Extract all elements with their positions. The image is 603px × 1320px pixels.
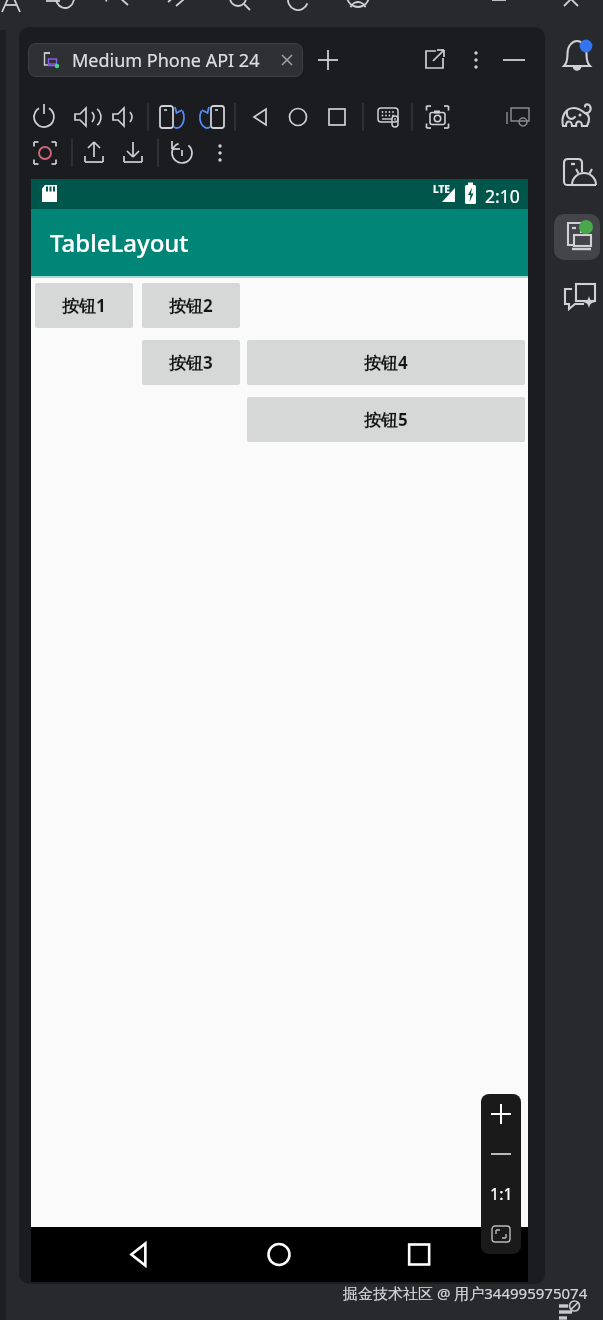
- button[interactable]: 按钮1: [35, 283, 133, 328]
- staticText: Medium Phone API 24: [72, 48, 260, 73]
- staticText: 按钮3: [169, 351, 213, 374]
- staticText: 按钮1: [62, 294, 106, 317]
- button[interactable]: 按钮4: [247, 340, 525, 385]
- button[interactable]: Open in window: [422, 47, 448, 73]
- button[interactable]: Gradle: [554, 93, 600, 139]
- staticText: 掘金技术社区 @ 用户344995975074: [343, 1283, 588, 1303]
- button[interactable]: Notifications: [554, 32, 600, 78]
- button[interactable]: Running Devices: [554, 214, 600, 260]
- button[interactable]: Minimize: [500, 47, 528, 75]
- staticText: 1:1: [490, 1183, 513, 1205]
- button[interactable]: Medium Phone API 24: [28, 43, 303, 77]
- button[interactable]: 按钮2: [142, 283, 240, 328]
- button[interactable]: Gemini: [554, 273, 600, 319]
- button[interactable]: 按钮5: [247, 397, 525, 442]
- button[interactable]: 按钮3: [142, 340, 240, 385]
- button[interactable]: Zoom out: [481, 1134, 521, 1174]
- staticText: 按钮2: [169, 294, 213, 317]
- staticText: TableLayout: [50, 226, 189, 259]
- button[interactable]: 1:1: [481, 1174, 521, 1214]
- staticText: LTE: [433, 182, 450, 196]
- staticText: 按钮4: [364, 351, 408, 374]
- button[interactable]: Device Manager: [554, 150, 600, 196]
- staticText: 按钮5: [364, 408, 408, 431]
- button[interactable]: New tab: [314, 46, 342, 74]
- button[interactable]: Fit to screen: [481, 1214, 521, 1254]
- button[interactable]: More options: [463, 47, 489, 73]
- staticText: 2:10: [485, 184, 520, 208]
- button[interactable]: Close tab: [275, 48, 299, 72]
- button[interactable]: Zoom in: [481, 1094, 521, 1134]
